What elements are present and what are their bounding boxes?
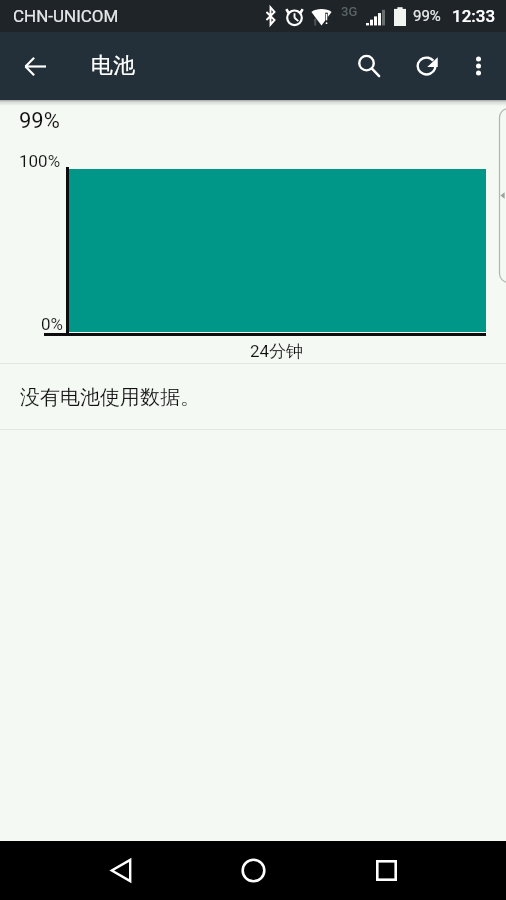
button[interactable]: Search: [340, 32, 398, 100]
staticText: 99%: [413, 7, 441, 25]
staticText: 没有电池使用数据。: [20, 385, 200, 410]
staticText: 0%: [41, 314, 64, 334]
button[interactable]: Back: [81, 841, 161, 900]
button[interactable]: Home: [213, 841, 293, 900]
staticText: 3G: [341, 4, 358, 19]
staticText: 100%: [19, 151, 61, 171]
staticText: CHN-UNICOM: [13, 6, 119, 26]
staticText: 24分钟: [250, 341, 304, 362]
button[interactable]: Navigate up: [0, 32, 70, 100]
button[interactable]: More options: [454, 32, 502, 100]
staticText: 99%: [19, 108, 60, 134]
staticText: 12:33: [452, 6, 496, 26]
button[interactable]: Recent apps: [346, 841, 426, 900]
button[interactable]: 没有电池使用数据。: [0, 364, 506, 430]
button[interactable]: Refresh: [398, 32, 454, 100]
staticText: 电池: [91, 52, 135, 80]
